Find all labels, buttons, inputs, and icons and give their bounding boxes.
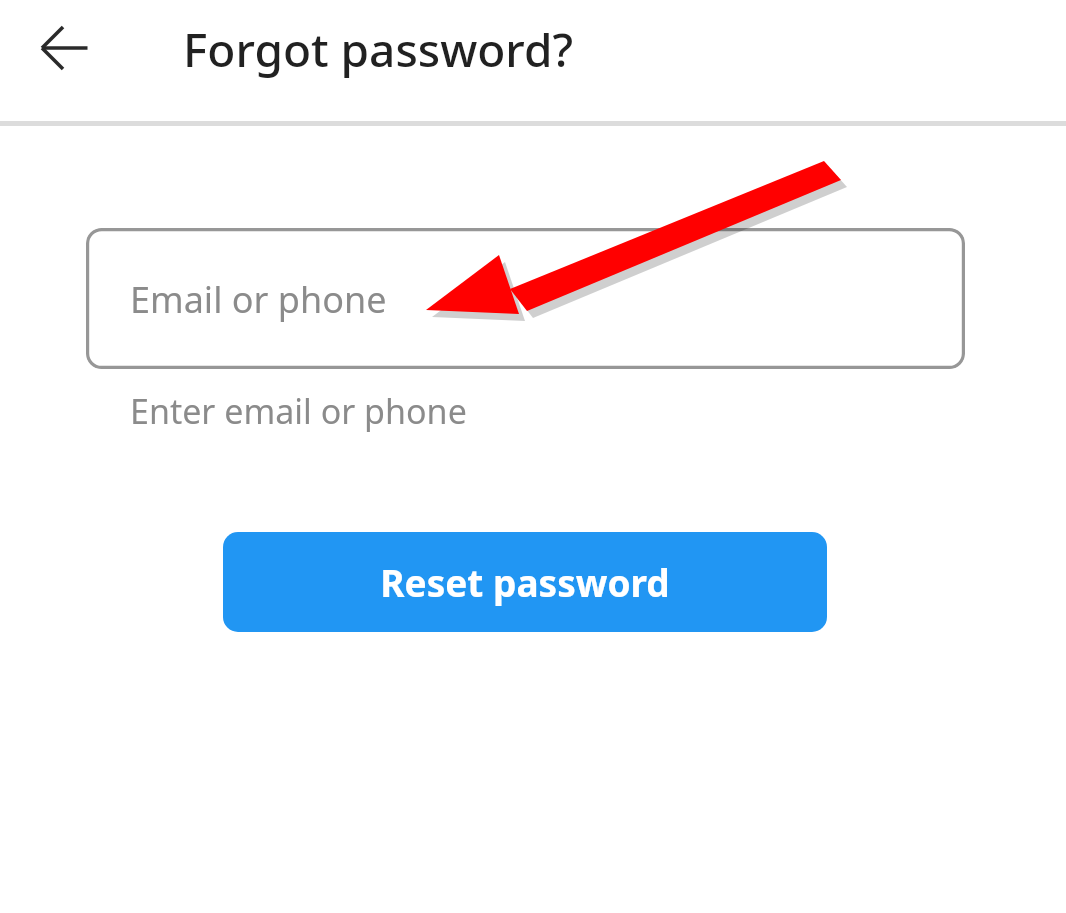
- button[interactable]: Back: [18, 2, 110, 94]
- staticText: Enter email or phone: [130, 388, 467, 434]
- staticText: Reset password: [380, 557, 670, 607]
- button[interactable]: Email or phone: [86, 228, 965, 369]
- staticText: Email or phone: [130, 275, 387, 324]
- button[interactable]: Reset password: [223, 532, 827, 632]
- staticText: Forgot password?: [183, 18, 573, 81]
